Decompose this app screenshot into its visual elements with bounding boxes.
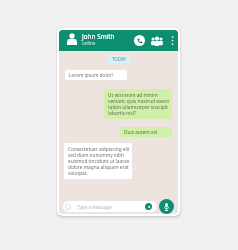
button[interactable]: Record voice message: [159, 199, 174, 214]
staticText: Duis autem vel: [124, 129, 158, 135]
button[interactable]: Consectetuer adipiscing elit, sed diam n…: [64, 143, 132, 179]
staticText: online: [82, 40, 96, 46]
staticText: Lorem ipsum dolor!: [69, 72, 113, 78]
button[interactable]: Duis autem vel: [120, 127, 172, 137]
button[interactable]: Ut wisi enim ad minim veniam, quis nostr…: [104, 89, 172, 119]
staticText: Type a message: [77, 204, 112, 210]
staticText: Consectetuer adipiscing elit, sed diam n…: [68, 146, 129, 176]
button[interactable]: Type a message: [63, 201, 157, 212]
staticText: John Smith: [82, 32, 115, 41]
other: Contact avatar: [67, 33, 77, 45]
button[interactable]: Lorem ipsum dolor!: [65, 70, 127, 80]
button[interactable]: More options: [170, 35, 175, 46]
button[interactable]: TODAY: [112, 56, 126, 62]
staticText: TODAY: [112, 56, 126, 62]
button[interactable]: Call: [134, 35, 145, 46]
button[interactable]: Group members: [151, 36, 163, 46]
staticText: Ut wisi enim ad minim veniam, quis nostr…: [108, 92, 169, 116]
button[interactable]: Send: [145, 203, 152, 210]
